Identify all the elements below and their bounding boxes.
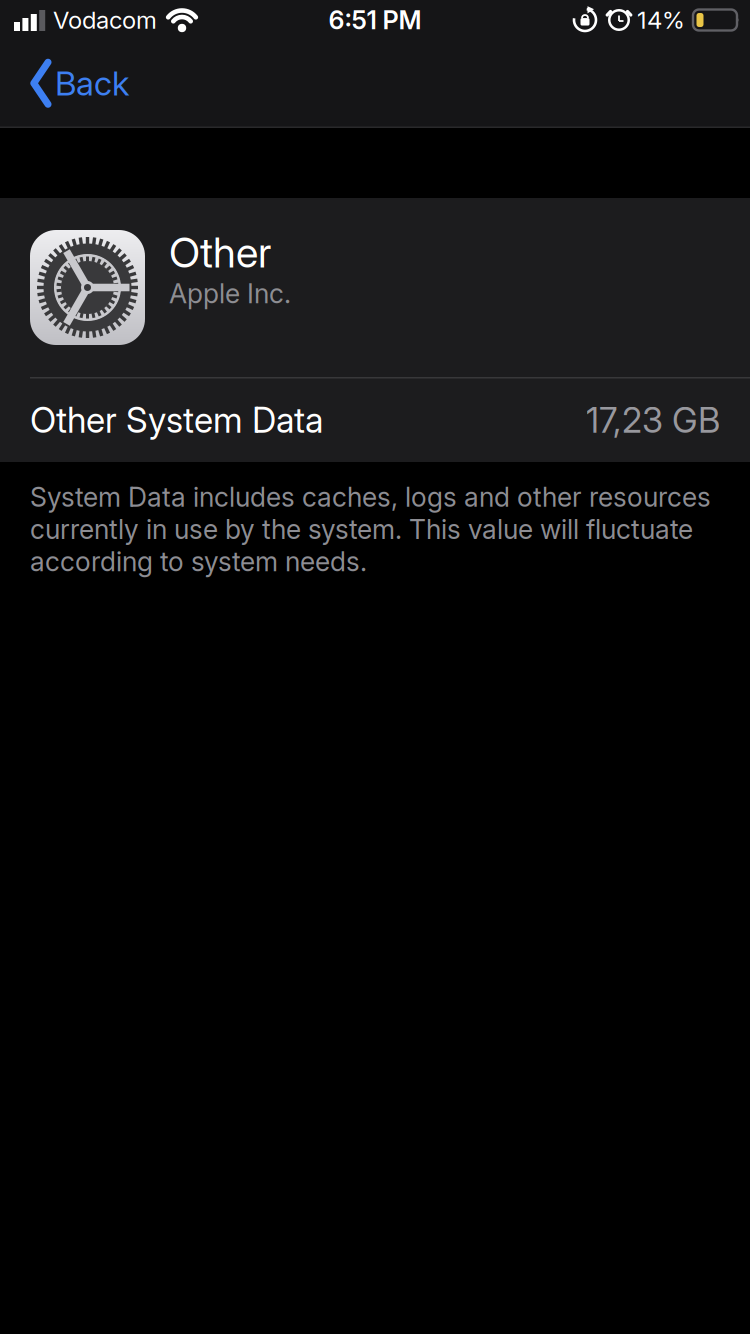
staticText: 17,23 GB bbox=[586, 399, 720, 441]
staticText: Other System Data bbox=[30, 399, 323, 441]
staticText: Vodacom bbox=[53, 5, 157, 34]
staticText: Apple Inc. bbox=[169, 277, 291, 310]
staticText: 6:51 PM bbox=[328, 5, 421, 35]
staticText: currently in use by the system. This val… bbox=[30, 513, 693, 546]
staticText: Other bbox=[169, 227, 271, 277]
button[interactable]: Back bbox=[0, 60, 129, 106]
staticText: Back bbox=[55, 63, 129, 103]
staticText: 14% bbox=[637, 5, 685, 34]
staticText: according to system needs. bbox=[30, 545, 367, 578]
staticText: System Data includes caches, logs and ot… bbox=[30, 481, 711, 513]
